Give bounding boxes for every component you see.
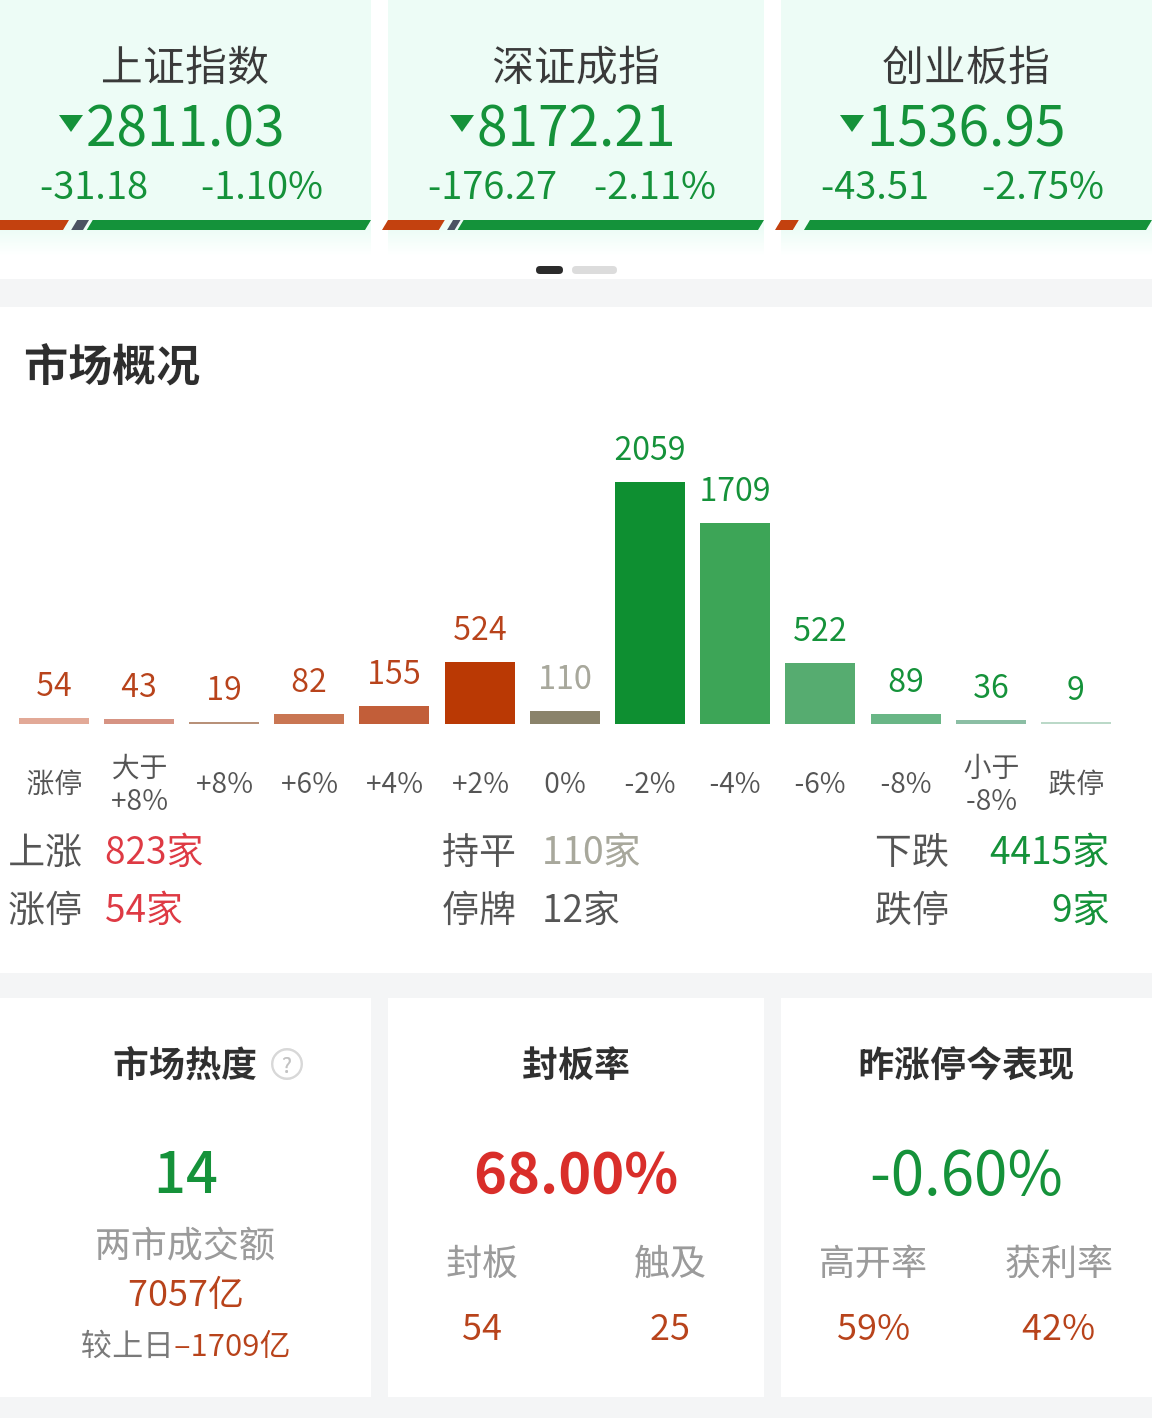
- staticText: 14: [154, 1128, 218, 1209]
- staticText: 市场热度: [113, 1035, 258, 1087]
- staticText: +8%: [196, 761, 253, 802]
- staticText: 上证指数: [101, 32, 270, 93]
- staticText: 上涨: [8, 821, 82, 875]
- staticText: 触及: [634, 1233, 707, 1285]
- staticText: -31.18: [40, 155, 149, 210]
- staticText: 82: [291, 655, 327, 701]
- staticText: +6%: [281, 761, 338, 802]
- button[interactable]: 市场概况: [24, 330, 200, 394]
- staticText: ?: [282, 1049, 292, 1079]
- staticText: -2.11%: [594, 155, 717, 210]
- staticText: 大于 +8%: [111, 745, 168, 818]
- staticText: 43: [121, 660, 157, 706]
- staticText: -4%: [709, 761, 761, 802]
- button[interactable]: 创业板指: [781, 0, 1152, 272]
- staticText: 市场概况: [24, 330, 200, 394]
- staticText: 89: [888, 655, 924, 701]
- button[interactable]: 昨涨停今表现: [781, 998, 1152, 1397]
- staticText: 1536.95: [867, 82, 1066, 162]
- staticText: -2%: [624, 761, 676, 802]
- staticText: 小于 -8%: [963, 745, 1020, 818]
- staticText: 823家: [105, 821, 204, 875]
- staticText: 涨停: [8, 879, 82, 933]
- staticText: 0%: [544, 761, 586, 802]
- staticText: 昨涨停今表现: [858, 1035, 1075, 1087]
- staticText: 522: [793, 604, 847, 650]
- staticText: 25: [650, 1298, 690, 1350]
- staticText: 跌停: [1048, 761, 1105, 802]
- staticText: -176.27: [428, 155, 558, 210]
- staticText: 封板率: [522, 1035, 631, 1087]
- staticText: 2059: [614, 423, 686, 469]
- staticText: 110: [538, 652, 592, 698]
- staticText: –1709亿: [174, 1320, 291, 1365]
- staticText: 54: [36, 659, 72, 705]
- staticText: 停牌: [442, 879, 516, 933]
- staticText: 19: [206, 663, 242, 709]
- staticText: 155: [367, 647, 421, 693]
- staticText: 高开率: [819, 1233, 928, 1285]
- staticText: 524: [453, 603, 507, 649]
- staticText: 持平: [442, 821, 516, 875]
- staticText: 较上日: [81, 1320, 174, 1365]
- staticText: -1.10%: [201, 155, 324, 210]
- staticText: 59%: [837, 1298, 911, 1350]
- staticText: 9: [1067, 663, 1085, 709]
- button[interactable]: 市场热度: [0, 998, 371, 1397]
- staticText: +2%: [452, 761, 509, 802]
- button[interactable]: 封板率: [388, 998, 764, 1397]
- staticText: 54家: [105, 879, 184, 933]
- staticText: -6%: [794, 761, 846, 802]
- staticText: 1709: [699, 464, 771, 510]
- staticText: 9家: [1052, 879, 1110, 933]
- staticText: 跌停: [875, 879, 949, 933]
- button[interactable]: Help: [271, 1048, 303, 1080]
- staticText: 68.00%: [474, 1128, 679, 1209]
- staticText: +4%: [366, 761, 423, 802]
- staticText: -0.60%: [870, 1125, 1063, 1212]
- staticText: 封板: [446, 1233, 519, 1285]
- staticText: 110家: [542, 821, 641, 875]
- staticText: 深证成指: [492, 32, 661, 93]
- staticText: 36: [973, 661, 1009, 707]
- staticText: 7057亿: [128, 1264, 244, 1316]
- button[interactable]: 上证指数: [0, 0, 371, 272]
- button[interactable]: 深证成指: [388, 0, 764, 272]
- staticText: 8172.21: [477, 82, 676, 162]
- staticText: 两市成交额: [95, 1215, 276, 1267]
- staticText: 54: [462, 1298, 502, 1350]
- staticText: -2.75%: [982, 155, 1105, 210]
- staticText: 4415家: [990, 821, 1110, 875]
- staticText: 涨停: [26, 761, 83, 802]
- staticText: -8%: [880, 761, 932, 802]
- staticText: 2811.03: [86, 82, 285, 162]
- staticText: 12家: [542, 879, 621, 933]
- staticText: 下跌: [875, 821, 949, 875]
- staticText: 创业板指: [882, 32, 1051, 93]
- staticText: 获利率: [1005, 1233, 1114, 1285]
- staticText: -43.51: [821, 155, 930, 210]
- staticText: 42%: [1022, 1298, 1096, 1350]
